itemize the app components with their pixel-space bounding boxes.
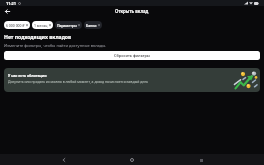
staticText: Сбросить фильтры	[114, 53, 150, 58]
staticText: Банки	[86, 23, 97, 28]
button[interactable]: Back	[2, 6, 12, 16]
button[interactable]: Back	[59, 155, 69, 165]
button[interactable]: Параметры	[55, 21, 82, 29]
button[interactable]: 6 000 000 ₽	[4, 21, 30, 29]
staticText: Нет подходящих вкладов	[4, 34, 72, 41]
button[interactable]: Сбросить фильтры	[4, 51, 260, 60]
staticText: Параметры	[57, 23, 77, 28]
button[interactable]: Банки	[84, 21, 102, 29]
staticText: У нас есть облигации	[8, 73, 47, 78]
staticText: 11:21	[6, 1, 16, 6]
staticText: Измените фильтры, чтобы найти доступные …	[4, 43, 107, 48]
staticText: 6 000 000 ₽	[6, 23, 25, 28]
button[interactable]: У нас есть облигации	[4, 68, 260, 92]
button[interactable]: Recent apps	[196, 155, 206, 165]
staticText: 1 месяц	[34, 23, 48, 28]
staticText: Открыть вклад	[115, 8, 149, 14]
staticText: Докупить или продать их можно в любой мо…	[8, 79, 149, 84]
button[interactable]: 1 месяц	[32, 21, 53, 29]
button[interactable]: Home	[127, 155, 137, 165]
